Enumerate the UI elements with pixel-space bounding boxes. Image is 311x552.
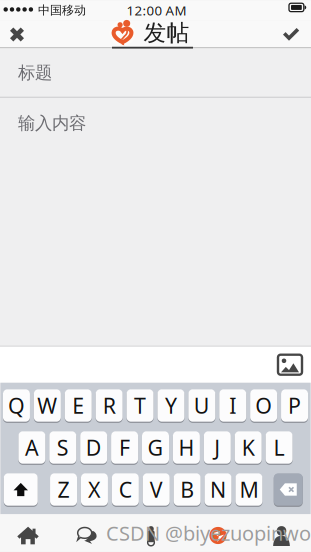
button[interactable]: Q	[3, 388, 30, 422]
staticText: K	[242, 433, 255, 462]
staticText: 发帖	[143, 19, 189, 47]
button[interactable]: H	[173, 430, 200, 464]
staticText: Y	[165, 391, 177, 420]
button[interactable]: U	[188, 388, 215, 422]
button[interactable]: W	[34, 388, 61, 422]
staticText: N	[210, 475, 226, 504]
staticText: H	[178, 433, 194, 462]
staticText: 输入内容	[18, 113, 86, 134]
button[interactable]: V	[143, 472, 170, 506]
staticText: E	[72, 391, 84, 420]
button[interactable]: S	[49, 430, 76, 464]
staticText: C	[119, 475, 132, 504]
button[interactable]: 标题	[0, 49, 311, 97]
staticText: Z	[57, 475, 69, 504]
button[interactable]: 输入内容	[0, 98, 311, 346]
button[interactable]: Messages	[56, 517, 118, 552]
button[interactable]: Events	[118, 517, 184, 552]
staticText: 12:00 AM	[126, 1, 186, 19]
staticText: CSDN @biyezuopinwo	[106, 520, 311, 546]
button[interactable]: Add photo	[273, 347, 307, 383]
staticText: U	[194, 391, 210, 420]
button[interactable]: K	[235, 430, 262, 464]
button[interactable]: X	[81, 472, 108, 506]
button[interactable]: Home	[0, 517, 56, 552]
button[interactable]: T	[126, 388, 153, 422]
button[interactable]: P	[281, 388, 308, 422]
button[interactable]: F	[111, 430, 138, 464]
button[interactable]: Shift	[4, 472, 38, 506]
staticText: M	[239, 475, 258, 504]
staticText: V	[150, 475, 163, 504]
staticText: O	[255, 391, 272, 420]
button[interactable]: Profile	[252, 517, 311, 552]
staticText: L	[274, 433, 285, 462]
staticText: Q	[8, 391, 25, 420]
button[interactable]: Y	[157, 388, 184, 422]
button[interactable]: G	[142, 430, 169, 464]
button[interactable]: Done	[272, 20, 311, 49]
button[interactable]: J	[204, 430, 231, 464]
staticText: R	[103, 391, 116, 420]
staticText: B	[180, 475, 194, 504]
staticText: P	[288, 391, 301, 420]
button[interactable]: R	[96, 388, 123, 422]
button[interactable]: C	[112, 472, 139, 506]
staticText: D	[86, 433, 102, 462]
button[interactable]: Z	[50, 472, 77, 506]
staticText: X	[88, 475, 101, 504]
button[interactable]: D	[80, 430, 107, 464]
button[interactable]: Backspace	[274, 472, 303, 506]
button[interactable]: L	[266, 430, 293, 464]
staticText: S	[57, 433, 69, 462]
staticText: J	[214, 433, 220, 462]
staticText: A	[25, 433, 39, 462]
staticText: W	[37, 391, 57, 420]
staticText: F	[119, 433, 130, 462]
staticText: 中国移动	[38, 3, 86, 18]
button[interactable]: Discover	[184, 517, 252, 552]
button[interactable]: O	[250, 388, 277, 422]
button[interactable]: B	[174, 472, 201, 506]
staticText: T	[134, 391, 146, 420]
staticText: G	[147, 433, 163, 462]
button[interactable]: A	[18, 430, 45, 464]
staticText: I	[229, 391, 236, 420]
button[interactable]: I	[219, 388, 246, 422]
button[interactable]: Close	[0, 20, 34, 49]
button[interactable]: M	[235, 472, 262, 506]
button[interactable]: E	[65, 388, 92, 422]
button[interactable]: N	[204, 472, 231, 506]
staticText: 标题	[18, 62, 52, 83]
